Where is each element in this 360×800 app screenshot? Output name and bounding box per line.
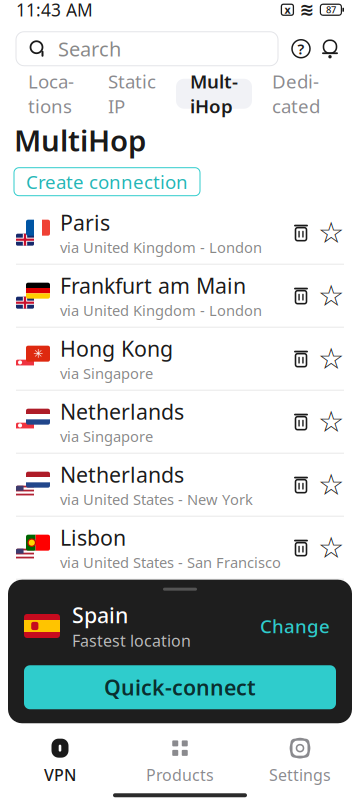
staticText: Change: [260, 614, 330, 638]
staticText: Netherlands: [60, 397, 184, 426]
staticText: via Singapore: [60, 427, 153, 446]
button[interactable]: Create connection: [14, 168, 200, 196]
staticText: ≋: [299, 0, 314, 20]
staticText: Quick-connect: [104, 673, 256, 701]
staticText: ☆: [318, 468, 344, 501]
staticText: Lisbon: [60, 523, 126, 552]
staticText: Frankfurt am Main: [60, 271, 246, 300]
staticText: via United Kingdom - London: [60, 238, 262, 257]
staticText: Products: [146, 764, 214, 785]
staticText: via Singapore: [60, 364, 153, 383]
button[interactable]: Frankfurt am Main: [0, 265, 360, 327]
button[interactable]: VPN: [0, 735, 120, 787]
staticText: ✳: [33, 347, 43, 360]
staticText: Spain: [72, 601, 128, 629]
staticText: Search: [58, 35, 121, 62]
button[interactable]: Favourite Netherlands connection: [316, 463, 346, 507]
button[interactable]: Static IP: [94, 79, 170, 109]
button[interactable]: Favourite Frankfurt am Main connection: [316, 274, 346, 318]
staticText: VPN: [44, 764, 76, 785]
staticText: 11:43 AM: [16, 0, 93, 21]
staticText: Create connection: [26, 169, 188, 194]
button[interactable]: Products: [120, 735, 240, 787]
button[interactable]: Favourite Netherlands connection: [316, 400, 346, 444]
staticText: 87: [326, 3, 336, 16]
button[interactable]: MultiHop: [176, 79, 252, 109]
button[interactable]: Settings: [240, 735, 360, 787]
button[interactable]: Favourite Lisbon connection: [316, 526, 346, 570]
button[interactable]: Favourite Hong Kong connection: [316, 337, 346, 381]
staticText: via United States - New York: [60, 490, 253, 509]
button[interactable]: Netherlands: [0, 454, 360, 516]
staticText: Settings: [269, 764, 331, 785]
staticText: Netherlands: [60, 460, 184, 489]
staticText: Paris: [60, 208, 110, 237]
button[interactable]: Delete Netherlands connection: [286, 463, 316, 507]
button[interactable]: Delete Lisbon connection: [286, 526, 316, 570]
button[interactable]: ✳: [0, 328, 360, 390]
staticText: Static IP: [108, 69, 156, 118]
staticText: ☆: [318, 405, 344, 438]
staticText: ☆: [318, 279, 344, 312]
staticText: Hong Kong: [60, 334, 173, 363]
button[interactable]: Delete Netherlands connection: [286, 400, 316, 444]
staticText: x: [284, 3, 290, 17]
staticText: ☆: [318, 342, 344, 375]
staticText: Locations: [28, 69, 74, 118]
button[interactable]: Lisbon: [0, 517, 360, 579]
button[interactable]: Delete Frankfurt am Main connection: [286, 274, 316, 318]
staticText: Fastest location: [72, 630, 191, 651]
staticText: via United States - San Francisco: [60, 553, 281, 572]
button[interactable]: Search: [16, 32, 278, 66]
button[interactable]: Delete Paris connection: [286, 211, 316, 255]
staticText: Dedicated: [272, 69, 320, 118]
staticText: ☆: [318, 216, 344, 249]
button[interactable]: Help: [286, 32, 316, 66]
button[interactable]: Dedicated: [258, 79, 334, 109]
button[interactable]: Paris: [0, 202, 360, 264]
button[interactable]: Notifications: [316, 32, 344, 66]
staticText: MultiHop: [14, 121, 146, 160]
button[interactable]: Favourite Paris connection: [316, 211, 346, 255]
staticText: via United Kingdom - London: [60, 301, 262, 320]
staticText: ☆: [318, 531, 344, 564]
button[interactable]: Change: [250, 608, 340, 644]
staticText: MultiHop: [190, 69, 238, 118]
button[interactable]: Quick-connect: [24, 665, 336, 709]
button[interactable]: Locations: [14, 79, 88, 109]
button[interactable]: Netherlands: [0, 391, 360, 453]
button[interactable]: Delete Hong Kong connection: [286, 337, 316, 381]
staticText: ?: [297, 39, 304, 58]
